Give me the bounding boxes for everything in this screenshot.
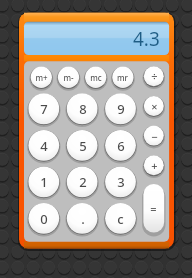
button[interactable]: 4 xyxy=(28,130,59,161)
staticText: ÷ xyxy=(151,69,158,84)
button[interactable]: 2 xyxy=(67,166,98,197)
staticText: + xyxy=(151,158,158,173)
button[interactable]: m+ xyxy=(31,67,52,88)
button[interactable]: mr xyxy=(112,67,133,88)
staticText: × xyxy=(151,99,158,114)
staticText: 2 xyxy=(79,173,87,191)
staticText: 9 xyxy=(117,100,125,118)
button[interactable]: Equals xyxy=(143,184,164,232)
staticText: mr xyxy=(117,72,128,83)
button[interactable]: 9 xyxy=(105,93,136,124)
button[interactable]: 3 xyxy=(105,166,136,197)
staticText: 5 xyxy=(79,137,87,155)
button[interactable]: 0 xyxy=(28,203,59,234)
button[interactable]: 6 xyxy=(105,130,136,161)
staticText: 4.3 xyxy=(133,26,160,52)
button[interactable]: 7 xyxy=(28,93,59,124)
staticText: m- xyxy=(63,72,74,83)
button[interactable]: Subtract xyxy=(144,126,164,146)
button[interactable]: 8 xyxy=(67,93,98,124)
button[interactable]: 1 xyxy=(28,166,59,197)
button[interactable]: . xyxy=(67,203,98,234)
button[interactable]: Divide xyxy=(144,66,164,86)
staticText: = xyxy=(150,201,157,216)
button[interactable]: Multiply xyxy=(144,96,164,116)
staticText: c xyxy=(117,210,124,228)
staticText: 8 xyxy=(79,100,87,118)
staticText: mc xyxy=(90,72,102,83)
staticText: 3 xyxy=(117,173,125,191)
staticText: − xyxy=(151,129,158,144)
button[interactable]: c xyxy=(105,203,136,234)
staticText: 6 xyxy=(117,137,125,155)
staticText: 7 xyxy=(40,100,48,118)
button[interactable]: mc xyxy=(85,67,106,88)
staticText: . xyxy=(81,210,85,228)
staticText: 1 xyxy=(40,173,48,191)
staticText: 0 xyxy=(40,210,48,228)
button[interactable]: m- xyxy=(58,67,79,88)
button[interactable]: 5 xyxy=(67,130,98,161)
staticText: 4 xyxy=(40,137,48,155)
button[interactable]: Add xyxy=(144,155,164,175)
staticText: m+ xyxy=(35,72,48,83)
